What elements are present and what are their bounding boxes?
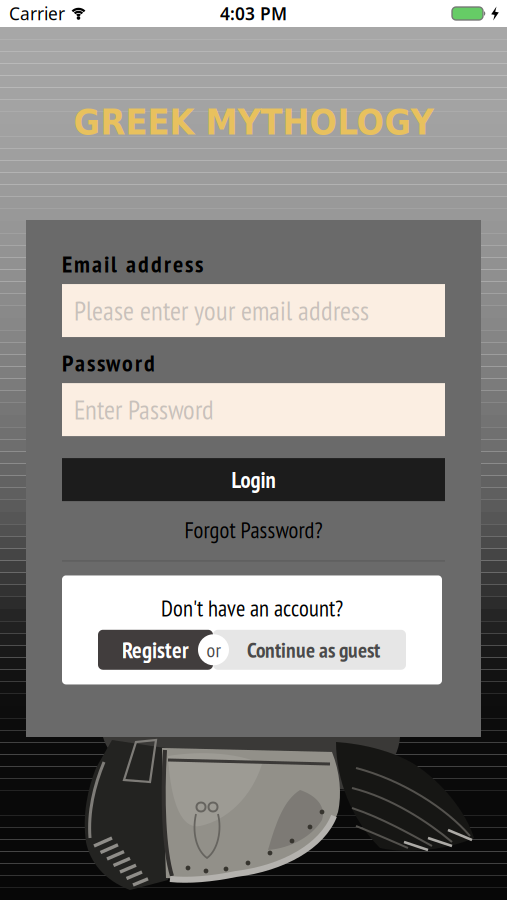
button[interactable]: Forgot Password?: [62, 515, 445, 544]
staticText: E m a i l a d d r e s s: [62, 248, 203, 279]
staticText: P a s s w o r d: [62, 347, 155, 378]
button[interactable]: Continue as guest: [213, 630, 406, 670]
button[interactable]: Enter Password: [62, 383, 445, 436]
staticText: Continue as guest: [247, 636, 380, 664]
staticText: Login: [231, 465, 275, 494]
staticText: Enter Password: [74, 392, 214, 427]
staticText: Carrier: [9, 2, 65, 25]
staticText: Please enter your email address: [74, 293, 369, 328]
staticText: Don't have an account?: [161, 593, 343, 623]
staticText: or: [206, 637, 220, 663]
staticText: Forgot Password?: [184, 515, 322, 544]
button[interactable]: Please enter your email address: [62, 284, 445, 337]
button[interactable]: Login: [62, 458, 445, 501]
button[interactable]: Register: [98, 630, 213, 670]
staticText: GREEK MYTHOLOGY: [73, 101, 433, 143]
staticText: Register: [122, 635, 189, 664]
staticText: 4:03 PM: [220, 2, 287, 25]
